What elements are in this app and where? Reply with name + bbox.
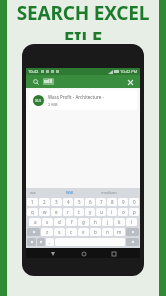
button[interactable]: Back — [48, 249, 57, 258]
button[interactable]: a — [29, 218, 41, 226]
button[interactable]: Will — [66, 190, 101, 195]
staticText: p — [133, 209, 136, 215]
staticText: 4 — [67, 199, 70, 205]
button[interactable]: p — [129, 208, 139, 216]
button[interactable]: e — [51, 208, 62, 216]
button[interactable]: w — [39, 208, 50, 216]
button[interactable]: h — [90, 218, 101, 226]
button[interactable]: XLS — [29, 90, 137, 110]
staticText: m — [117, 229, 122, 235]
button[interactable]: g — [78, 218, 89, 226]
staticText: 6 — [89, 199, 92, 205]
button[interactable]: wa — [30, 190, 66, 195]
button[interactable]: y — [85, 208, 95, 216]
button[interactable]: d — [54, 218, 65, 226]
staticText: l — [131, 219, 133, 225]
staticText: t — [78, 209, 80, 215]
staticText: 1 — [31, 199, 34, 205]
staticText: y — [89, 209, 92, 215]
button[interactable]: m — [114, 228, 125, 236]
staticText: 10:42 — [28, 69, 39, 74]
staticText: j — [107, 219, 109, 225]
staticText: will — [44, 78, 53, 85]
staticText: e — [55, 209, 58, 215]
button[interactable]: 8 — [107, 198, 117, 206]
staticText: s — [46, 219, 49, 225]
button[interactable]: Clear search — [125, 77, 135, 87]
staticText: i — [111, 209, 113, 215]
button[interactable]: r — [63, 208, 73, 216]
button[interactable]: 7 — [96, 198, 106, 206]
button[interactable]: o — [118, 208, 128, 216]
staticText: o — [122, 209, 125, 215]
staticText: 2 — [43, 199, 46, 205]
staticText: h — [94, 219, 97, 225]
staticText: a — [34, 219, 37, 225]
staticText: 2 MB — [48, 102, 58, 107]
button[interactable]: 2 — [39, 198, 50, 206]
button[interactable]: Backspace — [126, 228, 139, 236]
staticText: w — [43, 209, 47, 215]
staticText: XLS — [35, 98, 42, 103]
staticText: d — [58, 219, 61, 225]
button[interactable]: Emoji — [37, 238, 45, 246]
staticText: v — [82, 229, 85, 235]
button[interactable]: n — [102, 228, 113, 236]
button[interactable]: x — [54, 228, 65, 236]
button[interactable]: Recents — [109, 249, 118, 258]
staticText: c — [70, 229, 73, 235]
staticText: k — [118, 219, 121, 225]
button[interactable]: 4 — [63, 198, 73, 206]
staticText: q — [31, 209, 34, 215]
staticText: r — [67, 209, 69, 215]
staticText: 8 — [111, 199, 114, 205]
button[interactable]: u — [96, 208, 106, 216]
staticText: g — [82, 219, 85, 225]
button[interactable]: c — [66, 228, 77, 236]
button[interactable]: 1 — [27, 198, 38, 206]
button[interactable]: b — [90, 228, 101, 236]
button[interactable]: i — [107, 208, 117, 216]
button[interactable]: 3 — [51, 198, 62, 206]
button[interactable]: t — [74, 208, 84, 216]
staticText: 5 — [78, 199, 81, 205]
staticText: x — [58, 229, 61, 235]
staticText: 3 — [55, 199, 58, 205]
button[interactable]: f — [66, 218, 77, 226]
button[interactable]: 5 — [74, 198, 84, 206]
staticText: b — [94, 229, 97, 235]
staticText: z — [46, 229, 49, 235]
button[interactable]: Symbols — [27, 238, 36, 246]
staticText: Wass Profit - Architecture - — [48, 94, 104, 100]
staticText: 9 — [122, 199, 125, 205]
staticText: u — [100, 209, 103, 215]
staticText: , — [49, 239, 51, 245]
button[interactable]: 0 — [129, 198, 139, 206]
button[interactable]: Search — [126, 238, 139, 246]
button[interactable]: q — [27, 208, 38, 216]
staticText: n — [106, 229, 109, 235]
button[interactable]: s — [42, 218, 53, 226]
staticText: SEARCH EXCEL FILE — [0, 0, 166, 40]
button[interactable]: 9 — [118, 198, 128, 206]
button[interactable]: Shift — [27, 228, 40, 236]
staticText: 0 — [133, 199, 136, 205]
button[interactable]: k — [114, 218, 125, 226]
button[interactable]: z — [41, 228, 53, 236]
button[interactable]: Search — [31, 77, 40, 86]
button[interactable]: j — [102, 218, 113, 226]
staticText: f — [71, 219, 73, 225]
button[interactable]: , — [46, 238, 54, 246]
staticText: 10:42 PM — [120, 69, 138, 74]
staticText: 7 — [100, 199, 103, 205]
button[interactable]: medium — [101, 190, 136, 195]
button[interactable]: v — [78, 228, 89, 236]
button[interactable]: 6 — [85, 198, 95, 206]
button[interactable]: Home — [79, 249, 88, 258]
button[interactable]: l — [126, 218, 137, 226]
